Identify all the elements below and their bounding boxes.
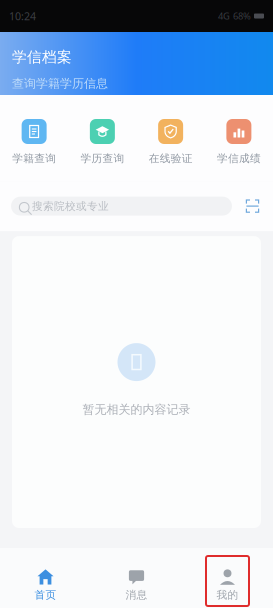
staticText: 首页 <box>34 588 56 601</box>
staticText: 10:24 <box>9 9 36 23</box>
button[interactable]: 首页 <box>0 556 91 606</box>
staticText: 4G <box>218 10 230 22</box>
button[interactable]: 消息 <box>91 556 182 606</box>
button[interactable]: 我的 <box>182 556 273 606</box>
button[interactable]: 学籍查询 <box>0 119 68 165</box>
button[interactable]: 搜索院校或专业 <box>11 197 232 216</box>
staticText: 学信成绩 <box>217 152 261 165</box>
staticText: 我的 <box>216 588 238 601</box>
staticText: 搜索院校或专业 <box>32 200 109 213</box>
staticText: 在线验证 <box>149 152 193 165</box>
button[interactable]: 扫一扫 <box>243 197 262 216</box>
staticText: 学历查询 <box>80 152 124 165</box>
staticText: 学信档案 <box>12 48 72 66</box>
button[interactable]: 学信成绩 <box>205 119 273 165</box>
staticText: 消息 <box>125 588 147 601</box>
button[interactable]: 在线验证 <box>136 119 205 165</box>
button[interactable]: 学历查询 <box>68 119 136 165</box>
staticText: 暂无相关的内容记录 <box>82 402 190 417</box>
staticText: 学籍查询 <box>12 152 56 165</box>
staticText: 查询学籍学历信息 <box>12 76 108 91</box>
staticText: 68% <box>233 10 251 22</box>
